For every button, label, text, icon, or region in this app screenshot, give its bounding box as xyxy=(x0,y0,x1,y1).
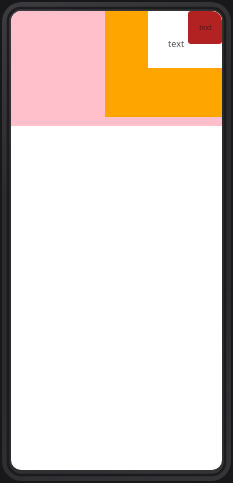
button[interactable]: text xyxy=(168,37,185,49)
button[interactable]: text xyxy=(11,11,222,126)
button[interactable]: text xyxy=(188,11,222,44)
staticText: text xyxy=(199,23,212,33)
button[interactable]: text xyxy=(105,11,222,117)
button[interactable]: text xyxy=(148,11,222,68)
staticText: text xyxy=(168,37,185,49)
